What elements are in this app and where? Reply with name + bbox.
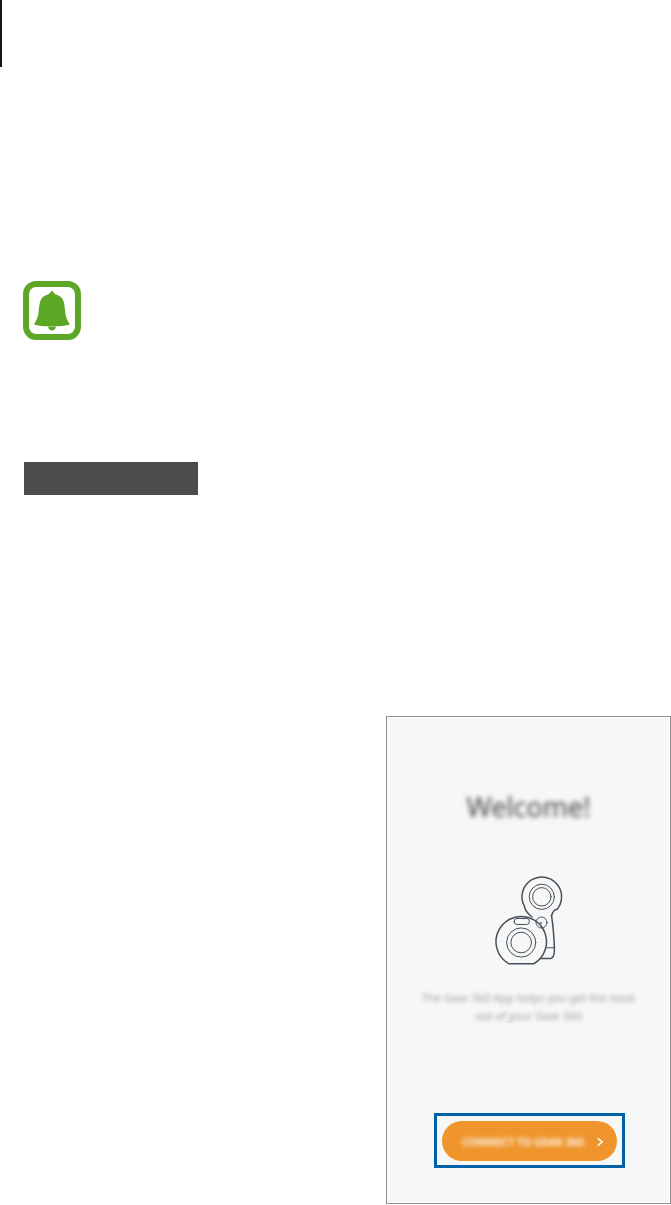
staticText: The Gear 360 App helps you get the most … <box>386 990 671 1023</box>
button[interactable]: Notifications <box>23 281 81 340</box>
staticText: Welcome! <box>386 788 671 825</box>
staticText: CONNECT TO GEAR 360 <box>450 1134 596 1149</box>
button[interactable]: CONNECT TO GEAR 360 <box>442 1121 617 1161</box>
